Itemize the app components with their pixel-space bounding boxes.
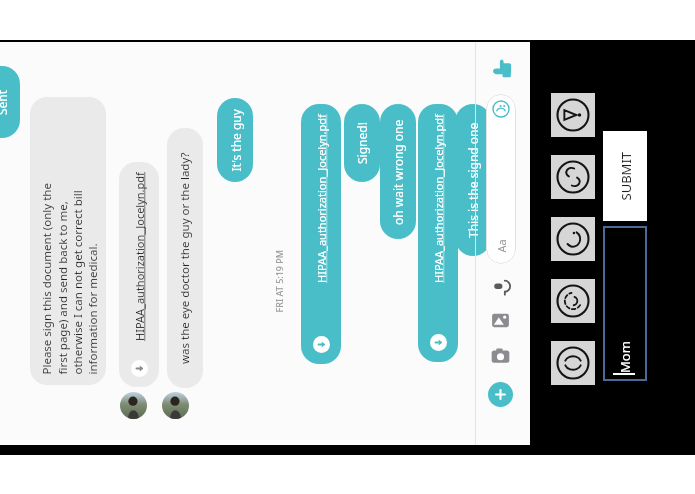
staticText: HIPAA_authorization_Jocelyn.pdf [132,172,147,341]
button[interactable]: oh wait wrong one [380,104,416,239]
staticText: HIPAA_authorization_Jocelyn.pdf [431,114,446,283]
button[interactable]: Please sign this document (only the firs… [30,97,106,385]
button[interactable]: Sent [0,66,20,138]
button[interactable]: It's the guy [217,98,253,182]
staticText: was the eye doctor the guy or the lady? [177,152,193,364]
button[interactable]: Photos [490,310,511,331]
button[interactable]: HIPAA_authorization_Jocelyn.pdf [418,104,458,362]
button[interactable]: Signed! [344,104,380,182]
staticText: This is the signd one [465,122,481,238]
staticText: HIPAA_authorization_Jocelyn.pdf [314,114,329,283]
staticText: FRI AT 5:19 PM [272,249,284,312]
staticText: oh wait wrong one [390,119,406,225]
button[interactable]: Send like [489,56,515,82]
staticText: Signed! [354,122,370,164]
button[interactable]: HIPAA_authorization_Jocelyn.pdf [119,162,159,387]
staticText: Sent [0,89,10,115]
staticText: It's the guy [227,108,243,171]
button[interactable]: Reaction 4 [551,279,595,323]
button[interactable]: Voice message [489,274,513,298]
button[interactable]: Mom [603,226,647,381]
button[interactable]: Reaction 3 [551,217,595,261]
button[interactable]: SUBMIT [603,131,647,221]
button[interactable]: Reaction 5 [551,341,595,385]
button[interactable]: Aa [486,94,516,264]
staticText: Aa [493,238,508,252]
button[interactable]: More options [488,382,513,407]
button[interactable]: Reaction 2 [551,155,595,199]
button[interactable]: HIPAA_authorization_Jocelyn.pdf [301,104,341,364]
button[interactable]: Camera [490,346,511,367]
button[interactable]: Reaction 1 [551,93,595,137]
staticText: Please sign this document (only the firs… [38,106,99,374]
staticText: Mom [616,341,634,373]
button[interactable]: This is the signd one [455,104,491,256]
button[interactable]: was the eye doctor the guy or the lady? [167,128,203,388]
staticText: SUBMIT [616,151,634,200]
